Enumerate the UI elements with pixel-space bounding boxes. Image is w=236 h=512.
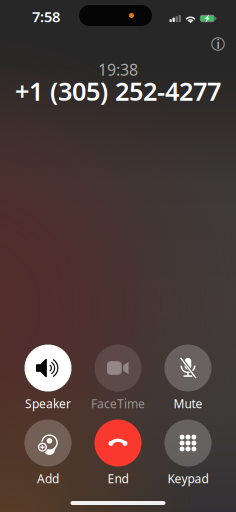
staticText: 19:38: [98, 59, 138, 80]
staticText: Mute: [173, 395, 202, 411]
button[interactable]: Call details: [203, 32, 233, 56]
staticText: FaceTime: [91, 395, 145, 411]
staticText: i: [216, 36, 219, 52]
button[interactable]: Add: [13, 421, 83, 485]
button[interactable]: End: [83, 421, 153, 485]
button[interactable]: Speaker: [13, 346, 83, 410]
staticText: Add: [37, 470, 59, 486]
staticText: Keypad: [167, 470, 208, 486]
staticText: Speaker: [25, 395, 71, 411]
button[interactable]: Mute: [153, 346, 223, 410]
button[interactable]: Keypad: [153, 421, 223, 485]
staticText: End: [107, 470, 128, 486]
staticText: 7:58: [32, 7, 60, 26]
button[interactable]: FaceTime: [83, 346, 153, 410]
staticText: +1 (305) 252-4277: [15, 74, 221, 108]
